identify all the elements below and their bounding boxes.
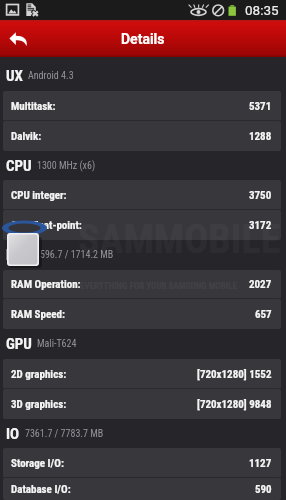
button[interactable]: Database I/O: [3,478,281,500]
staticText: RAM Operation: [11,278,81,291]
staticText: EVERYTHING FOR YOUR SAMSUNG MOBILE [80,281,237,292]
staticText: 1127 [249,457,272,470]
staticText: 657 [255,308,272,321]
staticText: Storage I/O: [11,457,64,470]
button[interactable]: Back [9,32,28,46]
staticText: 1300 MHz (x6) [37,160,96,172]
button[interactable]: RAM Speed: [3,299,281,329]
staticText: CPU [6,157,32,175]
staticText: 7361.7 / 7783.7 MB [25,428,104,440]
staticText: 3750 [249,189,272,202]
staticText: [720x1280] 1552 [197,368,272,381]
staticText: RAM [6,246,35,264]
staticText: 5371 [249,100,272,113]
staticText: Dalvik: [11,130,42,143]
staticText: Mali-T624 [37,338,77,350]
button[interactable]: Dalvik: [3,121,281,151]
button[interactable]: Multitask: [3,91,281,121]
staticText: IO [6,425,20,443]
staticText: UX [6,67,23,85]
button[interactable]: CPU integer: [3,180,281,210]
staticText: 596.7 / 1714.2 MB [40,249,114,261]
staticText: 590 [255,483,272,496]
staticText: 1288 [249,130,272,143]
staticText: CPU integer: [11,189,67,202]
staticText: Database I/O: [11,483,71,496]
staticText: GPU [6,335,32,353]
staticText: 08:35 [245,2,279,18]
staticText: 2D graphics: [11,368,67,381]
staticText: Details [121,31,165,47]
staticText: Android 4.3 [28,70,74,82]
staticText: [720x1280] 9848 [197,398,272,411]
staticText: Multitask: [11,100,56,113]
button[interactable]: RAM Operation: [3,270,281,299]
button[interactable]: Storage I/O: [3,448,281,478]
staticText: RAM Speed: [11,308,65,321]
staticText: CPU float-point: [11,219,82,232]
button[interactable]: CPU float-point: [3,210,281,240]
staticText: 2027 [249,278,272,291]
button[interactable]: 2D graphics: [3,359,281,389]
button[interactable]: 3D graphics: [3,389,281,419]
staticText: 3D graphics: [11,398,67,411]
staticText: 3172 [249,219,272,232]
staticText: SAMMOBILE [78,216,281,263]
